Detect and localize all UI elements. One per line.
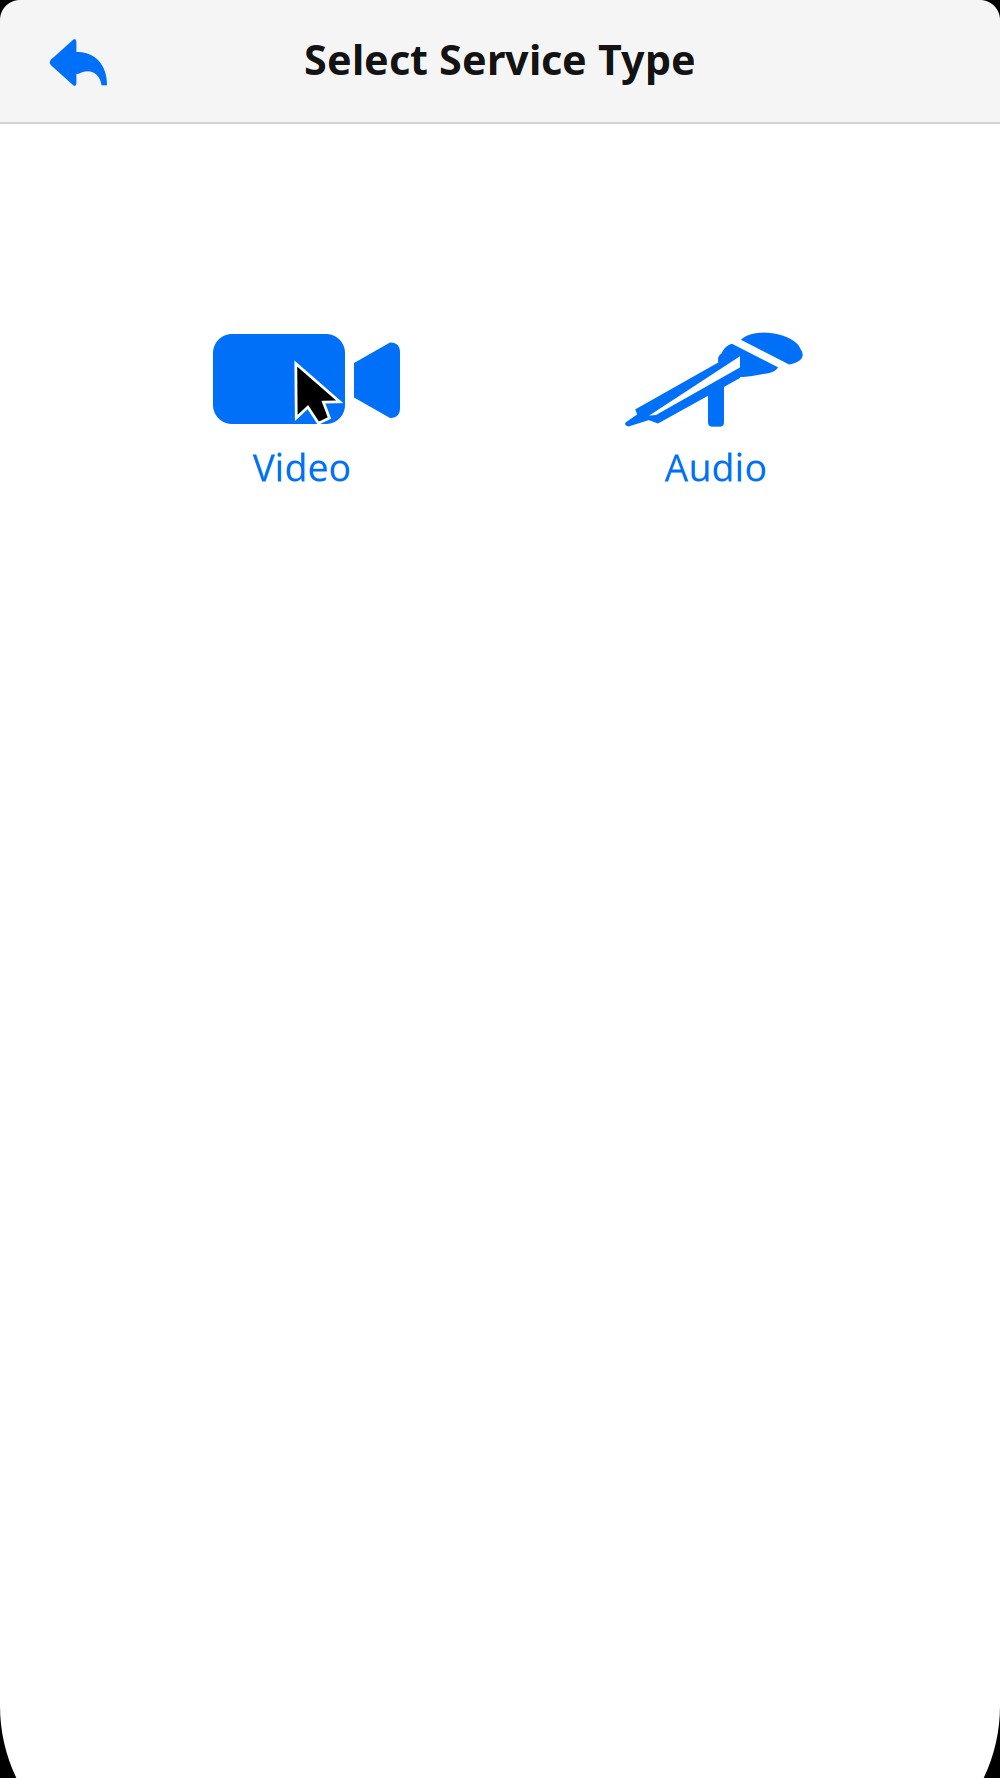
button[interactable]: Back	[34, 21, 124, 103]
button[interactable]: Video	[177, 333, 447, 523]
button[interactable]: Audio	[579, 333, 849, 523]
staticText: Audio	[664, 442, 767, 492]
staticText: Select Service Type	[304, 32, 696, 86]
staticText: Video	[252, 442, 351, 492]
